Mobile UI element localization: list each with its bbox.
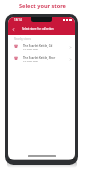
staticText: 0.9 miles away [23,60,38,63]
staticText: Nearby stores [14,37,31,41]
button[interactable]: The Scarlet Kettle, Cd [8,41,75,53]
staticText: Select your store [19,2,66,10]
staticText: The Scarlet Kettle, Cd [23,44,53,48]
button[interactable]: The Scarlet Kettle, Shor [8,53,75,65]
button[interactable]: Back [9,25,17,33]
staticText: 18:14 [14,18,22,22]
staticText: The Scarlet Kettle, Shor [23,56,56,60]
staticText: Select store for collection [22,27,54,31]
staticText: 0.4 miles away [23,48,38,51]
